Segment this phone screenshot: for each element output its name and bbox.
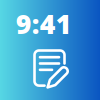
staticText: 9:41	[16, 6, 72, 41]
